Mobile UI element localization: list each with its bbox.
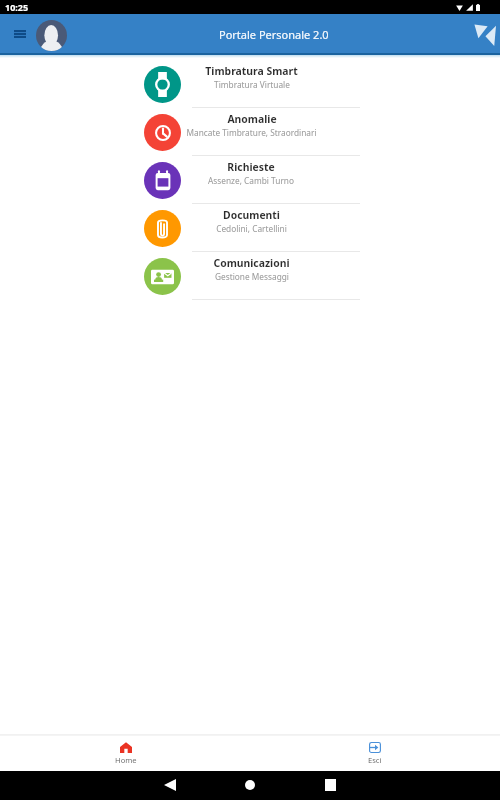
staticText: Mancate Timbrature, Straordinari [186, 127, 317, 138]
staticText: Documenti [223, 208, 280, 222]
button[interactable]: Esci [335, 734, 415, 771]
staticText: Comunicazioni [213, 256, 290, 270]
button[interactable]: Timbratura Smart [0, 60, 500, 108]
staticText: Gestione Messaggi [215, 271, 289, 282]
staticText: Home [115, 755, 137, 765]
staticText: 10:25 [5, 1, 29, 13]
staticText: Timbratura Virtuale [214, 79, 290, 90]
staticText: Assenze, Cambi Turno [208, 175, 294, 186]
button[interactable]: Documenti [0, 204, 500, 252]
button[interactable]: Send [474, 23, 496, 46]
button[interactable]: Comunicazioni [0, 252, 500, 300]
button[interactable]: Home [86, 734, 166, 771]
staticText: Anomalie [227, 112, 277, 126]
button[interactable]: Menu [6, 14, 34, 53]
button[interactable]: Back [164, 779, 176, 791]
button[interactable]: Richieste [0, 156, 500, 204]
staticText: Timbratura Smart [205, 64, 298, 78]
staticText: Richieste [227, 160, 275, 174]
staticText: Portale Personale 2.0 [219, 27, 329, 42]
button[interactable]: Home [245, 779, 255, 791]
button[interactable]: Profile [36, 20, 67, 51]
staticText: Cedolini, Cartellini [216, 223, 287, 234]
button[interactable]: Anomalie [0, 108, 500, 156]
staticText: Esci [368, 755, 382, 765]
